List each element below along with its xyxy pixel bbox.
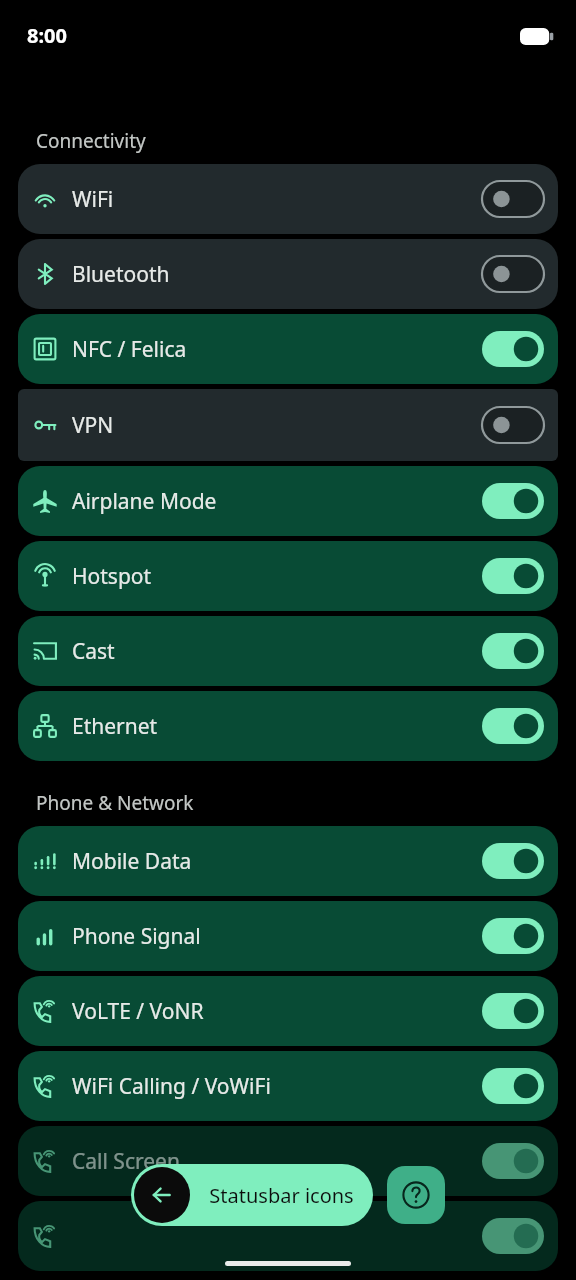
button[interactable]: Call Screen xyxy=(18,1126,558,1196)
staticText: 8:00 xyxy=(27,22,67,49)
button[interactable]: On xyxy=(482,918,544,954)
staticText: WiFi xyxy=(72,185,114,214)
button[interactable]: Off xyxy=(482,181,544,217)
staticText: Connectivity xyxy=(36,128,146,154)
staticText: Call Screen xyxy=(72,1147,180,1176)
staticText: NFC / Felica xyxy=(72,335,187,364)
button[interactable]: Bluetooth xyxy=(18,239,558,309)
staticText: Ethernet xyxy=(72,712,158,741)
staticText: VoLTE / VoNR xyxy=(72,997,204,1026)
button[interactable]: On xyxy=(482,843,544,879)
staticText: VPN xyxy=(72,411,114,440)
button[interactable]: On xyxy=(482,1068,544,1104)
button[interactable]: On xyxy=(482,331,544,367)
staticText: Cast xyxy=(72,637,115,666)
button[interactable]: On xyxy=(482,633,544,669)
button[interactable]: On xyxy=(482,1218,544,1254)
button[interactable]: Back xyxy=(131,1164,373,1226)
staticText: Phone & Network xyxy=(36,790,194,816)
button[interactable]: Airplane Mode xyxy=(18,466,558,536)
button[interactable]: VPN xyxy=(18,389,558,461)
button[interactable]: Cast xyxy=(18,616,558,686)
button[interactable]: On xyxy=(482,558,544,594)
button[interactable]: Mobile Data xyxy=(18,826,558,896)
button[interactable]: Ethernet xyxy=(18,691,558,761)
button[interactable]: Hotspot xyxy=(18,541,558,611)
button[interactable]: WiFi xyxy=(18,164,558,234)
button[interactable]: Off xyxy=(482,256,544,292)
button[interactable]: On xyxy=(482,708,544,744)
button[interactable]: On xyxy=(482,1143,544,1179)
button[interactable]: Off xyxy=(482,407,544,443)
button[interactable]: NFC / Felica xyxy=(18,314,558,384)
button[interactable]: On xyxy=(18,1201,558,1271)
staticText: Hotspot xyxy=(72,562,152,591)
staticText: WiFi Calling / VoWiFi xyxy=(72,1072,271,1101)
button[interactable]: On xyxy=(482,483,544,519)
staticText: Statusbar icons xyxy=(209,1182,354,1209)
button[interactable]: Back xyxy=(134,1167,190,1223)
staticText: Mobile Data xyxy=(72,847,192,876)
button[interactable]: Help xyxy=(387,1166,445,1224)
staticText: Airplane Mode xyxy=(72,487,217,516)
button[interactable]: Phone Signal xyxy=(18,901,558,971)
staticText: Bluetooth xyxy=(72,260,170,289)
staticText: Phone Signal xyxy=(72,922,201,951)
button[interactable]: WiFi Calling / VoWiFi xyxy=(18,1051,558,1121)
button[interactable]: On xyxy=(482,993,544,1029)
button[interactable]: VoLTE / VoNR xyxy=(18,976,558,1046)
